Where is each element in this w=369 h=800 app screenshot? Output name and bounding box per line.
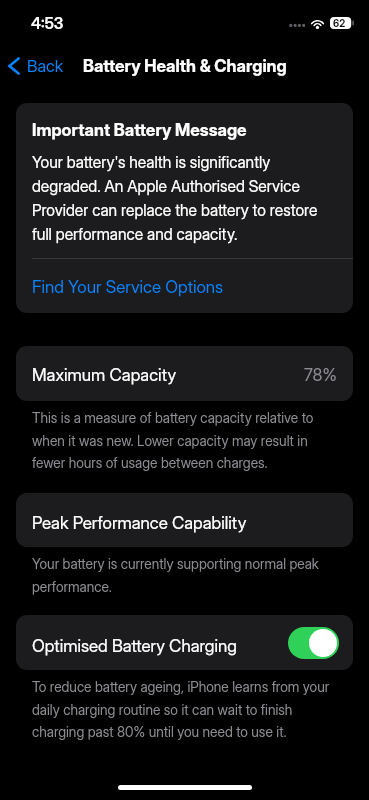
staticText: Peak Performance Capability — [32, 513, 247, 534]
button[interactable]: Optimised Battery Charging toggle — [288, 627, 339, 659]
staticText: 62 — [333, 17, 346, 29]
staticText: Your battery is currently supporting nor… — [32, 556, 337, 595]
button[interactable]: Find Your Service Options — [16, 259, 353, 313]
button[interactable]: Peak Performance Capability — [16, 493, 353, 547]
staticText: Optimised Battery Charging — [32, 636, 237, 657]
staticText: This is a measure of battery capacity re… — [32, 410, 337, 471]
staticText: Important Battery Message — [32, 120, 247, 141]
staticText: Your battery's health is significantly d… — [32, 153, 337, 244]
staticText: Back — [27, 56, 64, 76]
staticText: Maximum Capacity — [32, 365, 177, 386]
staticText: Battery Health & Charging — [83, 56, 287, 77]
staticText: 4:53 — [31, 14, 64, 33]
button[interactable]: Back — [0, 50, 74, 82]
staticText: 78% — [304, 365, 337, 386]
staticText: To reduce battery ageing, iPhone learns … — [32, 679, 337, 740]
staticText: Find Your Service Options — [32, 277, 224, 298]
